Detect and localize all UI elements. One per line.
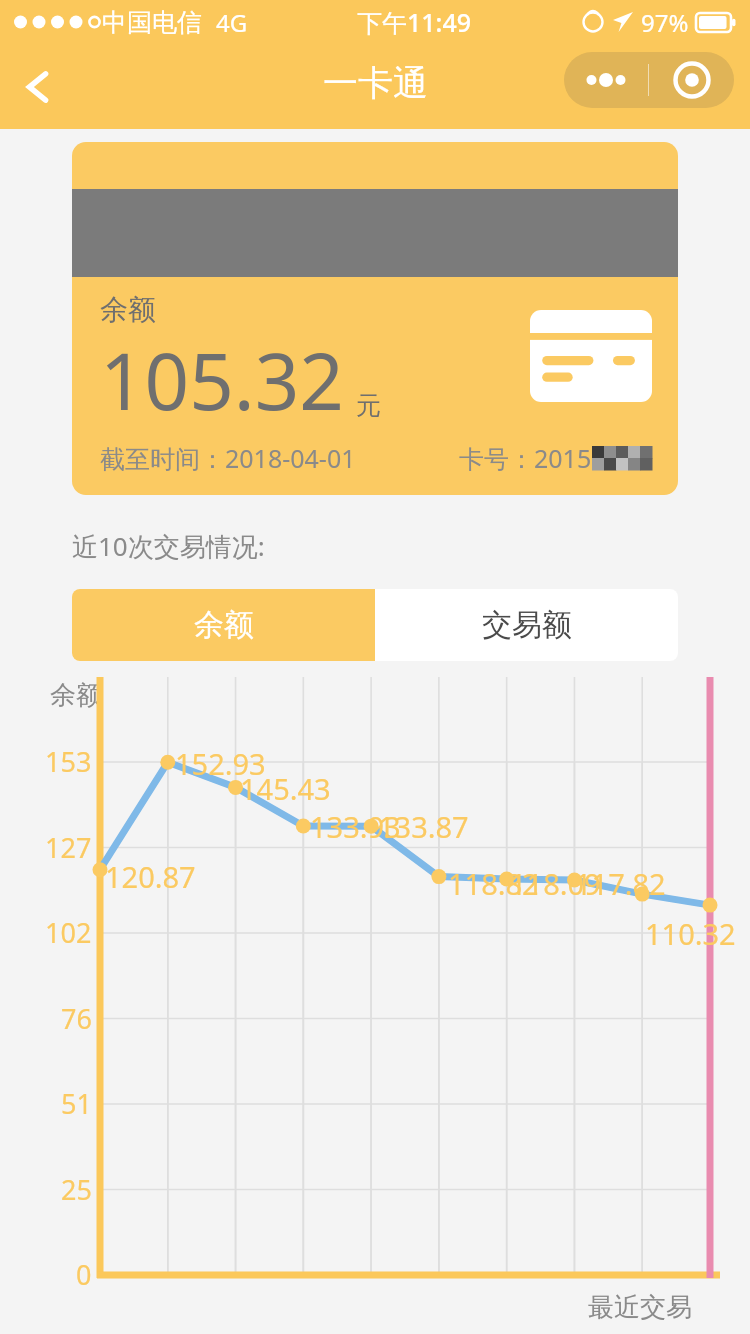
staticText: 0: [76, 1256, 92, 1293]
staticText: 元: [356, 390, 381, 421]
staticText: 4G: [216, 6, 248, 39]
staticText: 152.93: [175, 744, 266, 783]
staticText: 127: [45, 829, 92, 866]
button[interactable]: 余额: [72, 142, 678, 495]
staticText: 余额: [100, 292, 156, 327]
staticText: 97%: [641, 6, 689, 39]
staticText: 卡号：2015: [459, 441, 592, 475]
staticText: 25: [61, 1171, 92, 1208]
button[interactable]: Close: [649, 52, 734, 108]
staticText: 最近交易: [588, 1291, 692, 1324]
staticText: 下午11:49: [357, 5, 472, 39]
staticText: 120.87: [105, 857, 196, 896]
staticText: 133.93: [310, 807, 401, 846]
staticText: 余额: [50, 679, 102, 712]
staticText: 118.09: [510, 864, 601, 903]
staticText: 117.82: [575, 864, 666, 903]
staticText: 76: [61, 1000, 92, 1037]
staticText: 145.43: [240, 769, 331, 808]
staticText: 一卡通: [323, 61, 428, 105]
staticText: 133.87: [378, 807, 469, 846]
staticText: 105.32: [100, 327, 344, 433]
staticText: 交易额: [482, 606, 572, 644]
staticText: 余额: [194, 606, 254, 644]
staticText: 截至时间：2018-04-01: [100, 441, 356, 475]
staticText: 110.32: [645, 914, 736, 953]
staticText: 近10次交易情况:: [72, 528, 265, 564]
button[interactable]: Back: [0, 44, 78, 129]
staticText: 118.82: [448, 864, 539, 903]
staticText: 51: [61, 1085, 92, 1122]
button[interactable]: 余额: [72, 589, 375, 661]
button[interactable]: More: [564, 52, 648, 108]
staticText: 中国电信: [102, 7, 202, 38]
button[interactable]: 交易额: [375, 589, 678, 661]
staticText: 153: [45, 743, 92, 780]
staticText: 102: [45, 914, 92, 951]
